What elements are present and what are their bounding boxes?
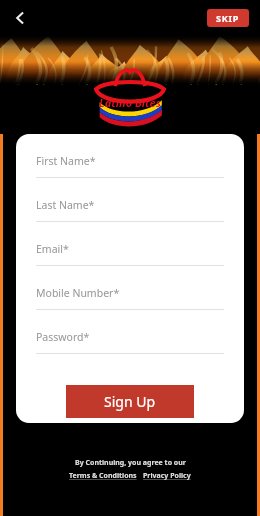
button[interactable]: Privacy Policy	[142, 470, 192, 482]
button[interactable]: Sign Up	[66, 385, 194, 418]
button[interactable]: SKIP	[207, 9, 249, 27]
staticText: Email*	[36, 242, 69, 256]
staticText: First Name*	[36, 154, 96, 168]
staticText: Terms & Conditions	[69, 471, 137, 481]
button[interactable]: First Name*	[36, 154, 224, 198]
button[interactable]: Mobile Number*	[36, 286, 224, 330]
button[interactable]: Password*	[36, 330, 224, 374]
staticText: Privacy Policy	[143, 471, 191, 481]
button[interactable]: Terms & Conditions	[68, 470, 138, 482]
staticText: SKIP	[216, 12, 240, 24]
staticText: Mobile Number*	[36, 286, 120, 300]
staticText: Last Name*	[36, 198, 95, 212]
staticText: Sign Up	[104, 392, 156, 411]
button[interactable]: Back	[6, 4, 34, 32]
button[interactable]: Email*	[36, 242, 224, 286]
staticText: By Continuing, you agree to our	[75, 458, 186, 468]
staticText: Latino Bites	[99, 95, 161, 110]
staticText: Password*	[36, 330, 90, 344]
button[interactable]: Last Name*	[36, 198, 224, 242]
